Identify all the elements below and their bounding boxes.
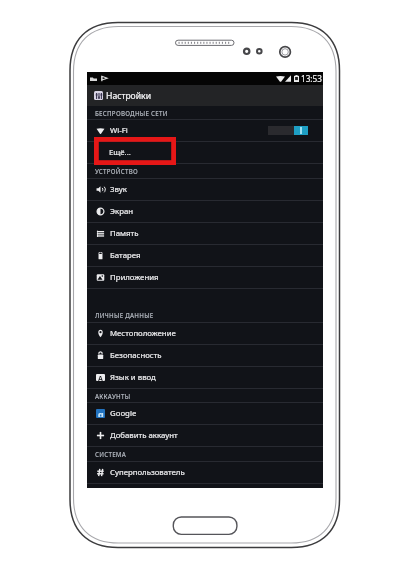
button[interactable]: Ещё...: [87, 142, 323, 164]
staticText: Добавить аккаунт: [110, 430, 178, 441]
button[interactable]: Звук: [87, 179, 323, 201]
staticText: Приложения: [110, 272, 159, 283]
staticText: Звук: [110, 184, 127, 195]
staticText: g: [98, 409, 104, 417]
staticText: УСТРОЙСТВО: [95, 167, 139, 175]
staticText: Безопасность: [110, 350, 162, 361]
staticText: АККАУНТЫ: [95, 392, 131, 400]
staticText: Местоположение: [110, 328, 176, 339]
button[interactable]: Местоположение: [87, 323, 323, 345]
staticText: СИСТЕМА: [95, 450, 127, 458]
staticText: Настройки: [106, 90, 151, 102]
staticText: Язык и ввод: [110, 372, 156, 383]
staticText: Память: [110, 228, 139, 239]
staticText: 13:53: [301, 73, 322, 84]
button[interactable]: Wi-Fi: [87, 120, 323, 142]
button[interactable]: Безопасность: [87, 345, 323, 367]
button[interactable]: Добавить аккаунт: [87, 425, 323, 447]
staticText: Экран: [110, 206, 134, 217]
staticText: БЕСПРОВОДНЫЕ СЕТИ: [95, 109, 168, 117]
button[interactable]: Память: [87, 223, 323, 245]
button[interactable]: Приложения: [87, 267, 323, 289]
button[interactable]: Экран: [87, 201, 323, 223]
button[interactable]: Батарея: [87, 245, 323, 267]
staticText: Ещё...: [109, 147, 131, 158]
staticText: ЛИЧНЫЕ ДАННЫЕ: [95, 311, 154, 319]
staticText: Wi-Fi: [110, 125, 128, 136]
button[interactable]: g: [87, 403, 323, 425]
staticText: Google: [110, 408, 137, 419]
staticText: Суперпользователь: [110, 467, 185, 478]
staticText: Батарея: [110, 250, 141, 261]
staticText: A: [98, 374, 103, 381]
button[interactable]: Суперпользователь: [87, 462, 323, 484]
button[interactable]: A: [87, 367, 323, 389]
